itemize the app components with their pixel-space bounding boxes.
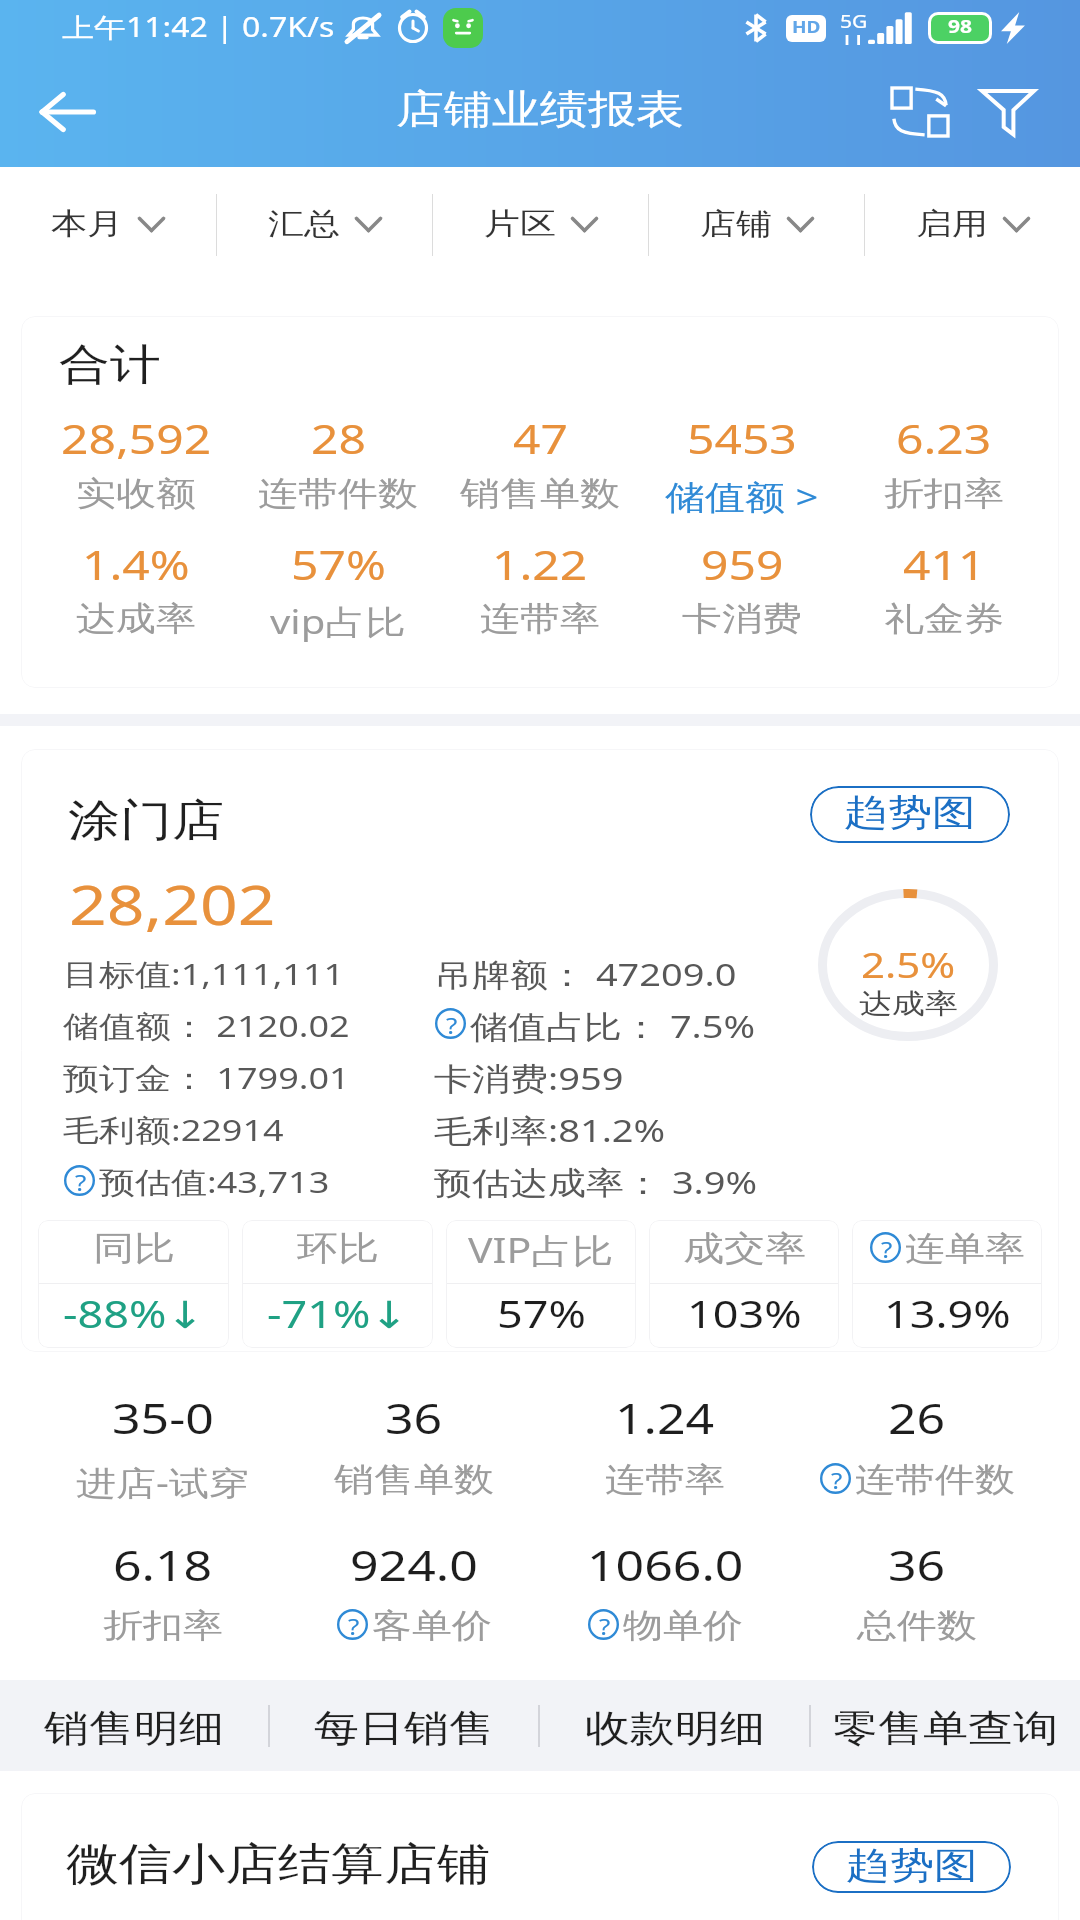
staticText: 13.9% <box>884 1288 1011 1339</box>
staticText: 98 <box>948 15 973 37</box>
button[interactable]: 1.22 <box>439 316 641 688</box>
button[interactable]: 411 <box>843 316 1045 688</box>
staticText: 36 <box>888 1537 946 1593</box>
button[interactable]: 36 <box>288 1390 539 1480</box>
staticText: ? <box>75 1168 87 1197</box>
staticText: ? <box>348 1612 360 1641</box>
button[interactable]: VIP占比 <box>446 1220 636 1348</box>
staticText: vip占比 <box>270 598 406 644</box>
button[interactable]: 收款明细 <box>540 1680 809 1771</box>
staticText: 目标值:1,111,111 <box>63 953 345 994</box>
staticText: 店铺 <box>700 205 772 242</box>
staticText: HD <box>792 16 821 38</box>
staticText: 35-0 <box>112 1390 214 1446</box>
button[interactable]: 趋势图 <box>810 786 1010 843</box>
staticText: 预估值:43,713 <box>99 1161 330 1202</box>
button[interactable]: 本月 <box>0 167 216 282</box>
staticText: 28,202 <box>69 866 276 941</box>
staticText: 环比 <box>297 1228 379 1271</box>
staticText: 微信小店结算店铺 <box>66 1837 490 1893</box>
button[interactable]: 汇总 <box>217 167 432 282</box>
button[interactable]: 1.4% <box>35 316 237 688</box>
staticText: 销售单数 <box>334 1459 494 1500</box>
button[interactable]: Filter <box>964 68 1052 156</box>
button[interactable]: 28,592 <box>35 316 237 688</box>
button[interactable]: 5453 <box>641 316 843 688</box>
staticText: 连带件数 <box>855 1459 1015 1500</box>
staticText: 达成率 <box>76 598 196 639</box>
staticText: ? <box>446 1011 458 1040</box>
button[interactable]: 成交率 <box>649 1220 839 1348</box>
staticText: 吊牌额： 47209.0 <box>434 952 737 995</box>
button[interactable]: 57% <box>237 316 439 688</box>
button[interactable]: Switch layout <box>876 68 964 156</box>
staticText: 物单价 <box>623 1605 743 1646</box>
staticText: 涂门店 <box>68 793 224 848</box>
staticText: 411 <box>903 538 986 592</box>
staticText: 合计 <box>59 338 161 391</box>
button[interactable]: 36 <box>791 1537 1043 1627</box>
button[interactable]: 6.23 <box>843 316 1045 688</box>
staticText: 销售单数 <box>460 473 620 514</box>
staticText: 零售单查询 <box>833 1705 1058 1752</box>
staticText: 57% <box>497 1288 586 1339</box>
staticText: ? <box>881 1235 893 1264</box>
staticText: 连带率 <box>605 1459 725 1500</box>
button[interactable]: 35-0 <box>37 1390 288 1480</box>
staticText: 36 <box>385 1390 443 1446</box>
staticText: 店铺业绩报表 <box>396 85 684 135</box>
button[interactable]: 片区 <box>433 167 648 282</box>
staticText: 连带率 <box>480 598 600 639</box>
staticText: 趋势图 <box>844 790 976 836</box>
staticText: 毛利额:22914 <box>63 1109 284 1150</box>
staticText: 卡消费:959 <box>434 1056 624 1099</box>
staticText: ? <box>599 1612 611 1641</box>
staticText: 同比 <box>93 1228 175 1271</box>
button[interactable]: 启用 <box>865 167 1080 282</box>
staticText: 趋势图 <box>846 1843 978 1886</box>
staticText: 5G <box>840 10 866 34</box>
button[interactable]: 28 <box>237 316 439 688</box>
staticText: 5453 <box>687 412 797 466</box>
staticText: 折扣率 <box>884 473 1004 514</box>
staticText: 达成率 <box>859 986 958 1021</box>
button[interactable]: 1066.0 <box>539 1537 791 1627</box>
staticText: 959 <box>701 538 784 592</box>
staticText: -88%↓ <box>63 1288 205 1339</box>
staticText: 预估达成率： 3.9% <box>434 1160 758 1203</box>
button[interactable]: 同比 <box>38 1220 229 1348</box>
button[interactable]: 零售单查询 <box>811 1680 1080 1771</box>
staticText: 片区 <box>484 205 556 242</box>
staticText: 28 <box>311 412 366 466</box>
staticText: 26 <box>888 1390 946 1446</box>
staticText: 上午11:42 | 0.7K/s <box>62 9 335 45</box>
button[interactable]: 店铺 <box>649 167 864 282</box>
staticText: 1066.0 <box>587 1537 744 1593</box>
button[interactable]: Back <box>26 71 108 153</box>
button[interactable]: 6.18 <box>37 1537 288 1627</box>
button[interactable]: 959 <box>641 316 843 688</box>
staticText: 毛利率:81.2% <box>434 1108 666 1151</box>
staticText: 预订金： 1799.01 <box>63 1057 350 1098</box>
staticText: 收款明细 <box>585 1705 765 1752</box>
staticText: 47 <box>513 412 568 466</box>
staticText: 57% <box>291 538 386 592</box>
staticText: 储值占比： 7.5% <box>470 1004 756 1047</box>
button[interactable]: 1.24 <box>539 1390 791 1480</box>
button[interactable]: 销售明细 <box>0 1680 268 1771</box>
staticText: 本月 <box>51 205 123 242</box>
button[interactable]: 趋势图 <box>812 1841 1011 1893</box>
button[interactable]: 924.0 <box>288 1537 539 1627</box>
staticText: 6.23 <box>896 412 992 466</box>
staticText: 6.18 <box>113 1537 213 1593</box>
button[interactable]: 环比 <box>242 1220 433 1348</box>
staticText: 启用 <box>916 205 988 242</box>
staticText: 实收额 <box>76 473 196 514</box>
button[interactable]: 47 <box>439 316 641 688</box>
staticText: 销售明细 <box>44 1705 224 1752</box>
button[interactable]: ? <box>852 1220 1042 1348</box>
button[interactable]: 26 <box>791 1390 1043 1480</box>
staticText: 成交率 <box>683 1228 806 1271</box>
staticText: VIP占比 <box>468 1226 614 1272</box>
button[interactable]: 每日销售 <box>270 1680 538 1771</box>
